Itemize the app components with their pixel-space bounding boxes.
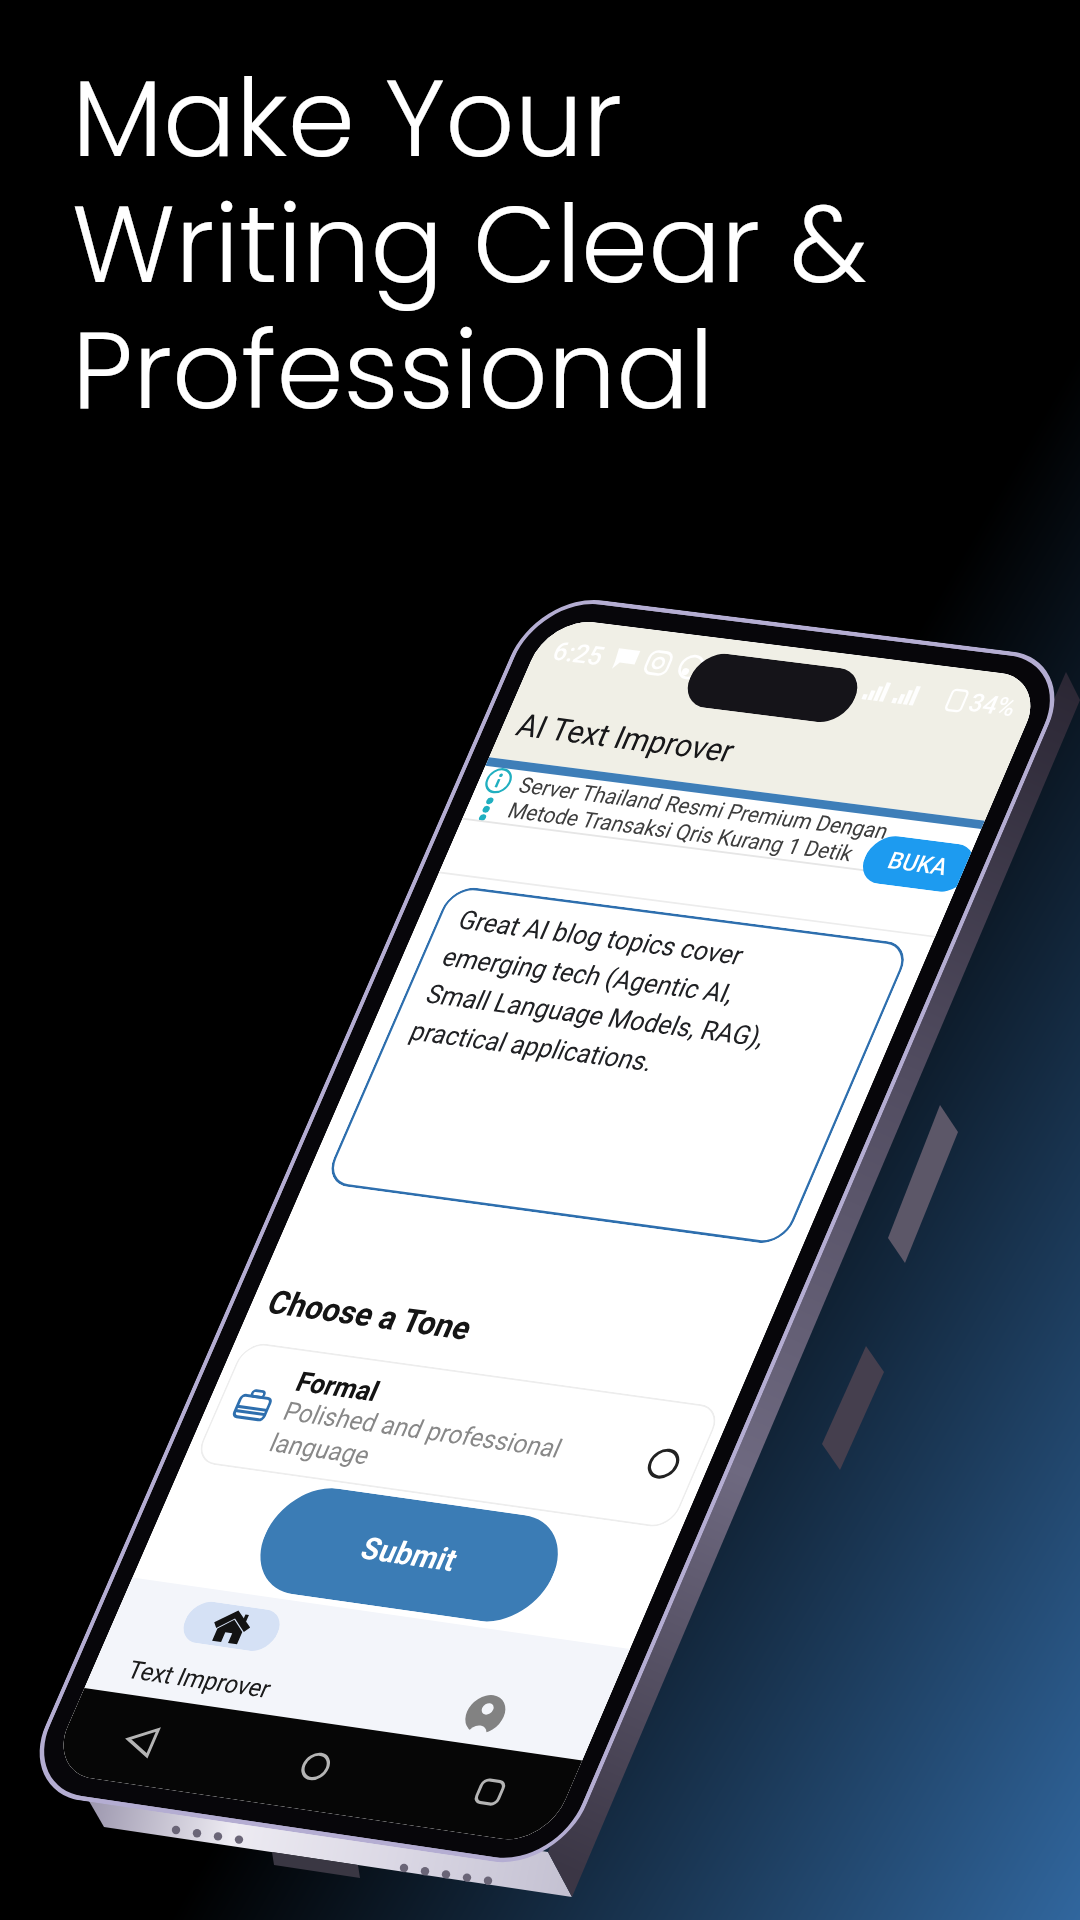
staticText: Polished and professional language [265, 1396, 567, 1495]
other: Profile [459, 1693, 512, 1736]
staticText: 6:25 [548, 636, 610, 671]
button[interactable]: Great AI blog topics cover emerging tech… [323, 885, 912, 1246]
staticText: BUKA [883, 847, 953, 881]
other: Back [118, 1722, 163, 1759]
other: Recents [469, 1775, 510, 1809]
staticText: Choose a Tone [262, 1283, 478, 1348]
staticText: 34% [964, 688, 1022, 722]
button[interactable]: Profile [364, 1618, 620, 1759]
staticText: Server Thailand Resmi Premium Dengan Met… [504, 773, 893, 869]
staticText: Submit [355, 1531, 463, 1579]
button[interactable]: BUKA [855, 833, 974, 893]
button[interactable]: Home [91, 1578, 345, 1719]
other: Select Formal tone [642, 1446, 685, 1481]
button[interactable]: Formal [193, 1341, 723, 1529]
staticText: Formal [291, 1365, 385, 1407]
other: Home [206, 1606, 257, 1647]
staticText: Great AI blog topics cover emerging tech… [405, 904, 812, 1091]
staticText: Text Improver [123, 1655, 276, 1704]
other: Home [293, 1748, 338, 1785]
button[interactable]: Submit [242, 1482, 576, 1628]
staticText: AI Text Improver [511, 707, 741, 770]
staticText: Make Your Writing Clear & Professional [72, 43, 868, 446]
